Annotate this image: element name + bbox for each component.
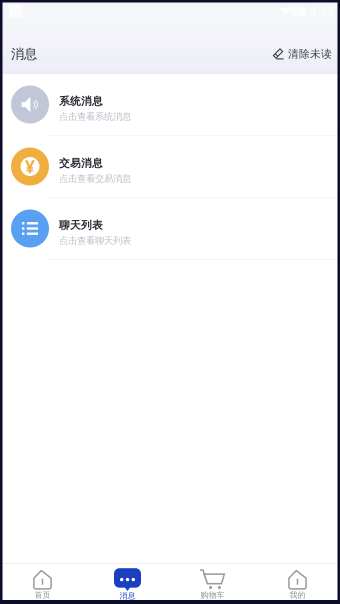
- button[interactable]: 首页: [0, 564, 85, 600]
- staticText: 系统消息: [59, 95, 103, 108]
- button[interactable]: 聊天列表: [0, 198, 340, 260]
- staticText: 消息: [11, 46, 37, 62]
- staticText: 清除未读: [288, 47, 332, 60]
- staticText: 点击查看交易消息: [59, 173, 131, 184]
- staticText: 购物车: [200, 590, 224, 600]
- button[interactable]: 清除未读: [272, 47, 340, 60]
- staticText: 消息: [119, 591, 135, 601]
- staticText: 交易消息: [59, 157, 103, 170]
- staticText: 聊天列表: [59, 219, 103, 232]
- button[interactable]: 我的: [255, 564, 340, 600]
- button[interactable]: ¥: [0, 136, 340, 198]
- button[interactable]: 购物车: [170, 564, 255, 600]
- button[interactable]: 消息: [85, 564, 170, 600]
- staticText: 点击查看聊天列表: [59, 235, 131, 246]
- button[interactable]: 系统消息: [0, 74, 340, 136]
- staticText: ¥: [25, 155, 35, 178]
- staticText: 点击查看系统消息: [59, 111, 131, 122]
- staticText: 我的: [289, 590, 305, 600]
- staticText: 首页: [34, 590, 50, 600]
